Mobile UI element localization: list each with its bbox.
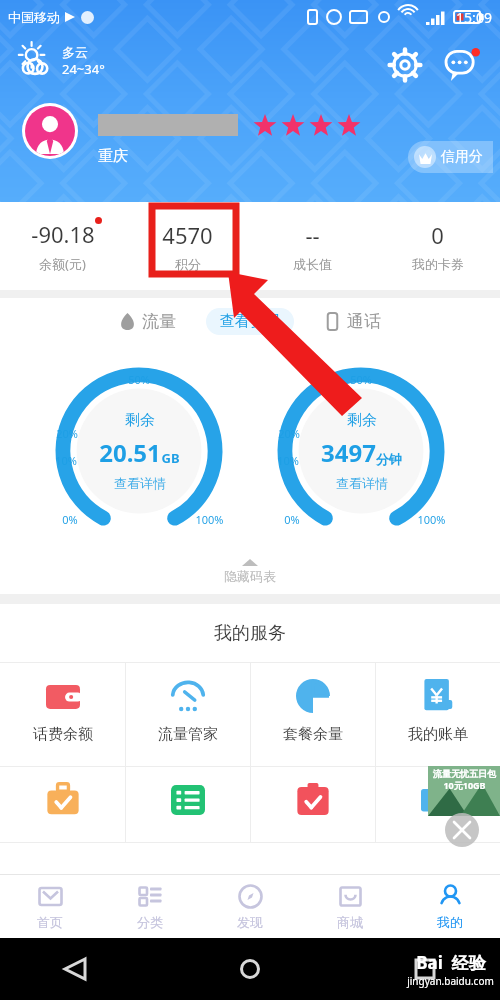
- staticText: 分钟: [376, 451, 402, 467]
- button[interactable]: 流量: [119, 311, 176, 332]
- staticText: 隐藏码表: [224, 568, 276, 584]
- staticText: 重庆: [98, 147, 128, 166]
- button[interactable]: 隐藏码表: [0, 559, 500, 584]
- button[interactable]: 0: [375, 202, 500, 290]
- button[interactable]: [0, 767, 125, 842]
- button[interactable]: 通话: [324, 311, 381, 332]
- staticText: 10元10GB: [443, 779, 486, 791]
- button[interactable]: --: [250, 202, 375, 290]
- staticText: 信用分: [441, 148, 483, 166]
- staticText: 我的服务: [214, 622, 286, 645]
- staticText: 积分: [175, 256, 201, 272]
- staticText: 多云: [62, 44, 88, 60]
- button[interactable]: [251, 767, 375, 842]
- staticText: 剩余: [347, 411, 377, 430]
- button[interactable]: 设置: [388, 48, 422, 82]
- staticText: 通话: [347, 311, 381, 332]
- staticText: 20%: [278, 426, 300, 441]
- button[interactable]: 剩余: [321, 411, 402, 491]
- staticText: 查看详情: [336, 475, 388, 491]
- staticText: 20.51: [99, 436, 161, 469]
- staticText: 查看费用: [220, 312, 280, 331]
- staticText: 流量管家: [158, 725, 218, 744]
- staticText: 20%: [56, 426, 78, 441]
- button[interactable]: 消息: [444, 46, 482, 84]
- staticText: jingyan.baidu.com: [407, 974, 494, 988]
- button[interactable]: [126, 767, 250, 842]
- button[interactable]: 我的: [400, 875, 500, 938]
- button[interactable]: 最近任务: [410, 954, 440, 984]
- button[interactable]: 分类: [100, 875, 200, 938]
- button[interactable]: 返回: [60, 954, 90, 984]
- staticText: 0%: [284, 512, 300, 527]
- staticText: --: [305, 220, 320, 250]
- button[interactable]: 查看费用: [206, 308, 294, 335]
- staticText: 中国移动: [8, 9, 60, 25]
- staticText: 剩余: [125, 411, 155, 430]
- staticText: 3497: [321, 436, 376, 469]
- button[interactable]: 首页: [0, 875, 100, 938]
- staticText: 话费余额: [33, 725, 93, 744]
- staticText: 流量无忧五日包: [433, 768, 496, 779]
- staticText: 10%: [55, 453, 77, 468]
- staticText: 100%: [195, 512, 224, 527]
- button[interactable]: 流量管家: [126, 663, 250, 766]
- button[interactable]: 关闭广告: [445, 813, 479, 847]
- staticText: Bai 经验: [416, 951, 486, 974]
- staticText: 分类: [137, 914, 163, 930]
- staticText: 0%: [62, 512, 78, 527]
- button[interactable]: 套餐余量: [251, 663, 375, 766]
- staticText: 15:09: [456, 8, 492, 27]
- button[interactable]: 信用分: [408, 141, 493, 173]
- staticText: 10%: [277, 453, 299, 468]
- staticText: 首页: [37, 914, 63, 930]
- button[interactable]: 话费余额: [0, 663, 125, 766]
- button[interactable]: 发现: [200, 875, 300, 938]
- staticText: 4570: [162, 220, 213, 250]
- staticText: GB: [161, 449, 180, 467]
- staticText: 商城: [337, 914, 363, 930]
- button[interactable]: 4570: [125, 202, 250, 290]
- staticText: 我的账单: [408, 725, 468, 744]
- staticText: 流量: [142, 311, 176, 332]
- staticText: 套餐余量: [283, 725, 343, 744]
- staticText: 24~34°: [62, 60, 105, 78]
- button[interactable]: 头像: [22, 103, 78, 159]
- button[interactable]: 剩余: [99, 411, 180, 491]
- staticText: 成长值: [293, 256, 332, 272]
- button[interactable]: [376, 767, 500, 842]
- staticText: -90.18: [31, 219, 95, 249]
- button[interactable]: 主页: [235, 954, 265, 984]
- staticText: 50%: [350, 372, 372, 387]
- staticText: 我的卡券: [412, 256, 464, 272]
- staticText: 查看详情: [114, 475, 166, 491]
- button[interactable]: -90.18: [0, 202, 125, 290]
- staticText: 50%: [128, 372, 150, 387]
- staticText: 我的: [437, 914, 463, 930]
- staticText: 余额(元): [39, 255, 86, 273]
- staticText: 0: [431, 220, 444, 250]
- button[interactable]: 我的账单: [376, 663, 500, 766]
- staticText: 发现: [237, 914, 263, 930]
- staticText: 100%: [417, 512, 446, 527]
- button[interactable]: 商城: [300, 875, 400, 938]
